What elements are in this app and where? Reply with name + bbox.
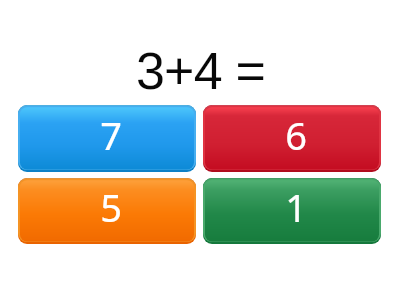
staticText: 3+4 = bbox=[136, 42, 266, 100]
staticText: 1 bbox=[285, 181, 307, 233]
staticText: 7 bbox=[100, 109, 122, 161]
button[interactable]: 7 bbox=[18, 105, 196, 172]
button[interactable]: 5 bbox=[18, 178, 196, 244]
staticText: 5 bbox=[100, 181, 122, 233]
staticText: 6 bbox=[285, 109, 307, 161]
button[interactable]: 1 bbox=[203, 178, 381, 244]
button[interactable]: 6 bbox=[203, 105, 381, 172]
